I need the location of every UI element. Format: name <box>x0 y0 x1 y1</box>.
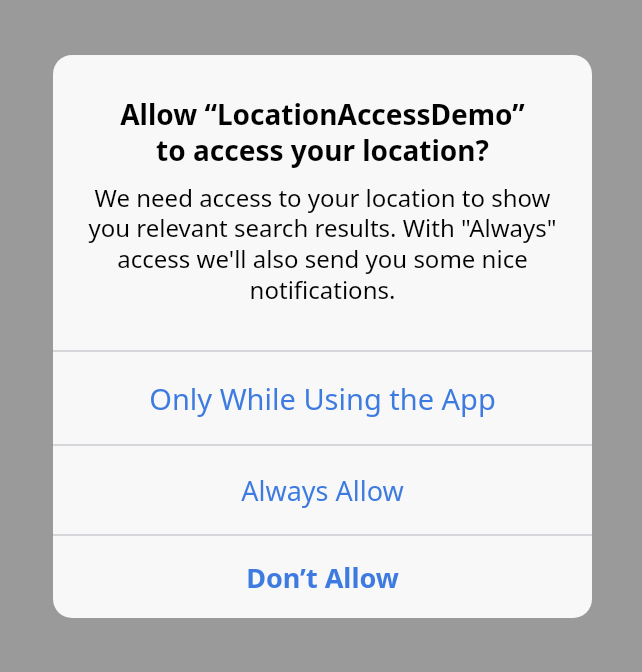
button[interactable]: Only While Using the App <box>53 352 592 444</box>
button[interactable]: Always Allow <box>53 446 592 534</box>
staticText: Only While Using the App <box>149 379 496 418</box>
staticText: Don’t Allow <box>246 559 399 596</box>
staticText: We need access to your location to show … <box>73 181 572 306</box>
staticText: Always Allow <box>241 472 404 509</box>
button[interactable]: Don’t Allow <box>53 536 592 618</box>
staticText: Allow “LocationAccessDemo” to access you… <box>120 95 525 169</box>
